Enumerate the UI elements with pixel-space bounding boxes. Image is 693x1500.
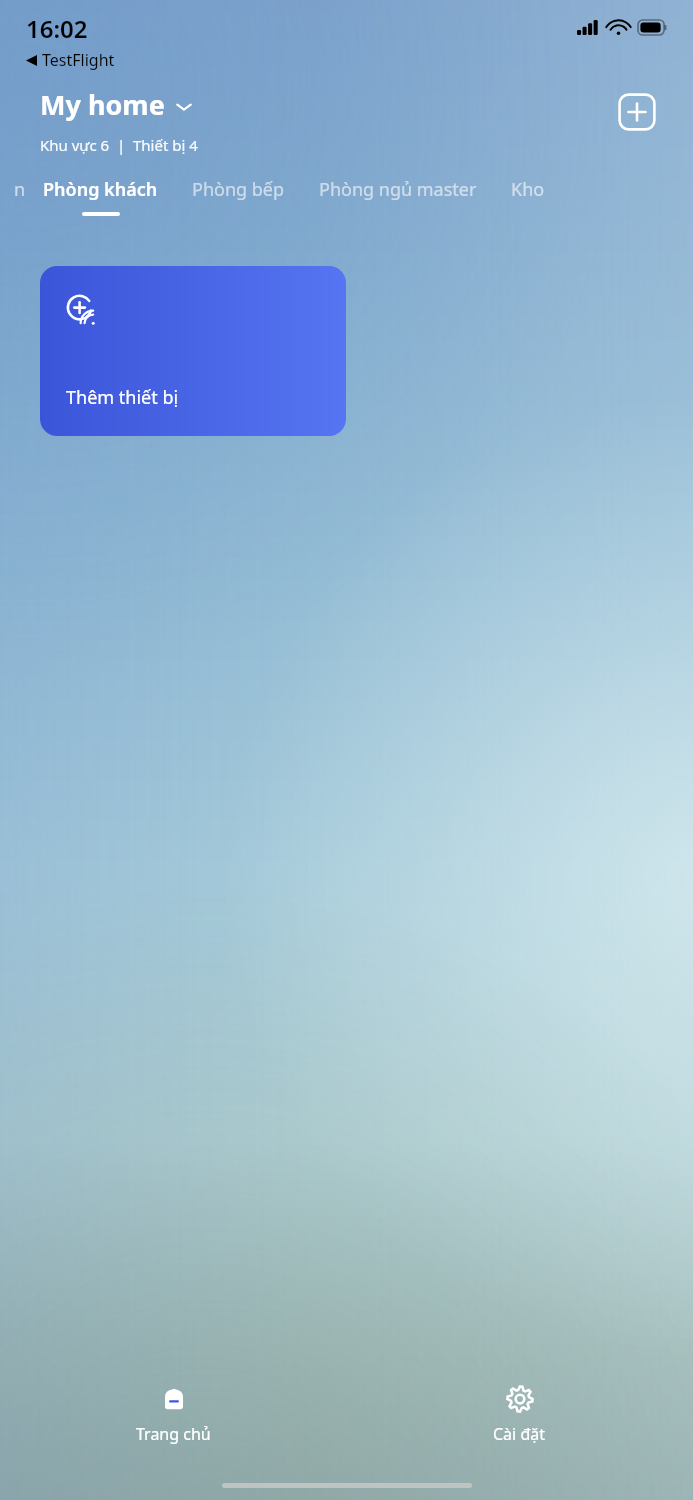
staticText: TestFlight xyxy=(42,49,115,71)
staticText: Trang chủ xyxy=(136,1423,211,1445)
staticText: Phòng ngủ master xyxy=(319,177,477,202)
staticText: n xyxy=(14,177,26,202)
button[interactable]: Thêm thiết bị xyxy=(40,266,346,436)
button[interactable]: n xyxy=(0,177,26,231)
button[interactable]: Trang chủ xyxy=(118,1380,229,1449)
button[interactable]: Kho xyxy=(511,177,545,202)
staticText: Kho xyxy=(511,177,545,202)
button[interactable]: Phòng ngủ master xyxy=(319,177,477,202)
staticText: Khu vực 6 | Thiết bị 4 xyxy=(40,135,198,155)
staticText: Phòng bếp xyxy=(192,177,285,202)
button[interactable]: Phòng bếp xyxy=(192,177,285,202)
staticText: Thêm thiết bị xyxy=(66,385,179,410)
staticText: Cài đặt xyxy=(493,1423,546,1445)
button[interactable]: Phòng khách xyxy=(43,177,158,216)
button[interactable]: Cài đặt xyxy=(475,1380,564,1449)
button[interactable]: Thêm xyxy=(617,92,657,132)
button[interactable]: My home xyxy=(40,86,192,123)
staticText: My home xyxy=(40,86,165,123)
staticText: 16:02 xyxy=(26,12,88,45)
staticText: Phòng khách xyxy=(43,177,158,202)
